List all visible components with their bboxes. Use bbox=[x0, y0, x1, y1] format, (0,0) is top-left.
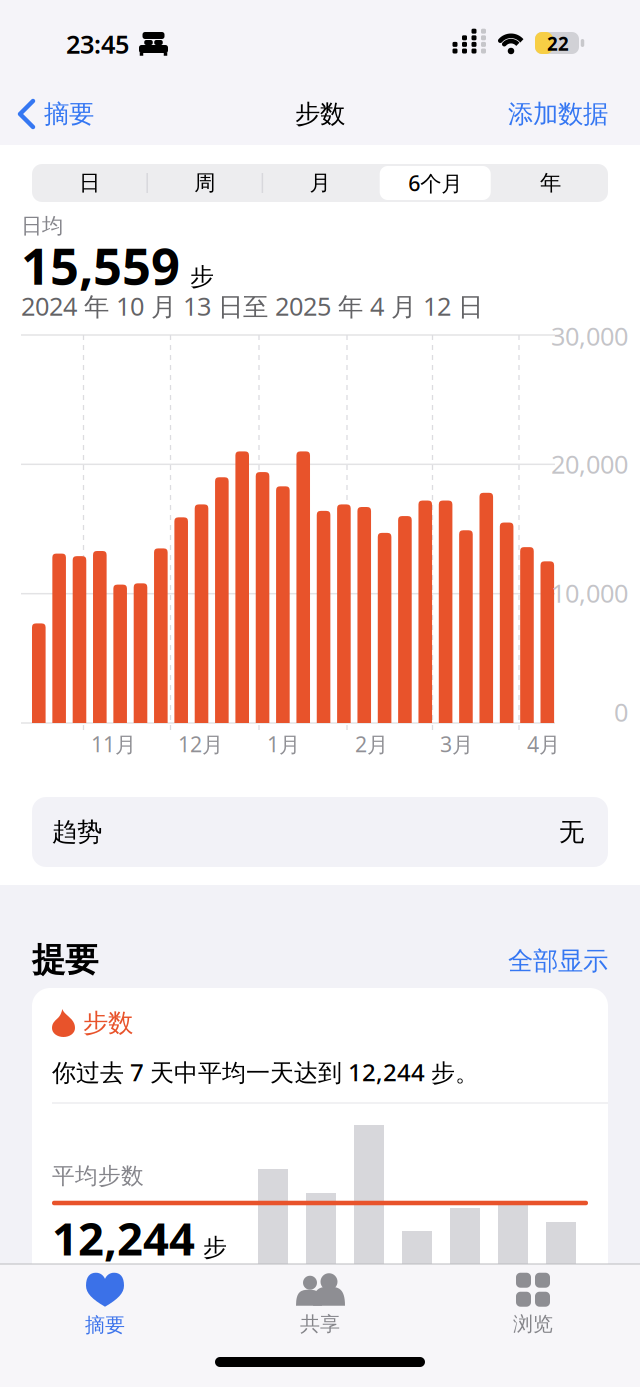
staticText: 步 bbox=[190, 262, 214, 291]
staticText: 30,000 bbox=[551, 319, 628, 353]
staticText: 全部显示 bbox=[508, 945, 608, 976]
staticText: 趋势 bbox=[52, 816, 102, 847]
staticText: 3月 bbox=[440, 730, 473, 758]
staticText: 日均 bbox=[21, 213, 63, 239]
staticText: 10,000 bbox=[551, 576, 628, 610]
staticText: 0 bbox=[614, 695, 628, 729]
staticText: 年 bbox=[540, 170, 561, 196]
staticText: 4月 bbox=[527, 730, 560, 758]
staticText: 平均步数 bbox=[52, 1162, 144, 1190]
button[interactable]: 步数 bbox=[32, 988, 608, 1387]
staticText: 添加数据 bbox=[508, 98, 608, 129]
staticText: 你过去 7 天中平均一天达到 12,244 步。 bbox=[52, 1056, 479, 1088]
staticText: 1月 bbox=[267, 730, 300, 758]
staticText: 12,244 bbox=[52, 1208, 195, 1268]
staticText: 2月 bbox=[355, 730, 388, 758]
staticText: 日 bbox=[79, 170, 100, 196]
button[interactable]: 趋势 bbox=[32, 797, 608, 867]
staticText: 无 bbox=[559, 816, 584, 847]
staticText: 11月 bbox=[91, 730, 136, 758]
staticText: 月 bbox=[309, 170, 330, 196]
button[interactable]: 摘要 bbox=[20, 98, 94, 129]
staticText: 22 bbox=[547, 31, 569, 56]
staticText: 步数 bbox=[83, 1007, 133, 1038]
button[interactable]: 周 bbox=[147, 164, 262, 202]
staticText: 摘要 bbox=[44, 98, 94, 129]
button[interactable]: 日 bbox=[32, 164, 147, 202]
staticText: 12月 bbox=[178, 730, 223, 758]
staticText: 2024 年 10 月 13 日至 2025 年 4 月 12 日 bbox=[21, 289, 483, 323]
button[interactable]: 浏览 bbox=[473, 1272, 593, 1338]
button[interactable]: 共享 bbox=[260, 1272, 380, 1338]
staticText: 周 bbox=[194, 170, 215, 196]
staticText: 23:45 bbox=[66, 27, 129, 61]
staticText: 20,000 bbox=[551, 447, 628, 481]
button[interactable]: 月 bbox=[262, 164, 377, 202]
staticText: 摘要 bbox=[85, 1313, 125, 1337]
button[interactable]: 年 bbox=[493, 164, 608, 202]
button[interactable]: 添加数据 bbox=[508, 98, 608, 129]
staticText: 共享 bbox=[300, 1312, 340, 1336]
staticText: 6个月 bbox=[408, 169, 462, 197]
staticText: 步数 bbox=[295, 98, 345, 129]
staticText: 提要 bbox=[32, 939, 98, 980]
staticText: 步 bbox=[203, 1233, 227, 1262]
button[interactable]: 全部显示 bbox=[508, 945, 608, 976]
staticText: 15,559 bbox=[21, 231, 180, 299]
staticText: 浏览 bbox=[513, 1312, 553, 1336]
button[interactable]: 摘要 bbox=[45, 1272, 165, 1338]
button[interactable]: 6个月 bbox=[378, 164, 493, 202]
